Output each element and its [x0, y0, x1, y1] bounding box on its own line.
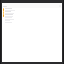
button[interactable]	[2, 14, 62, 17]
button[interactable]	[2, 11, 62, 14]
button[interactable]	[2, 8, 62, 11]
button[interactable]	[2, 17, 62, 20]
button[interactable]	[2, 20, 62, 23]
